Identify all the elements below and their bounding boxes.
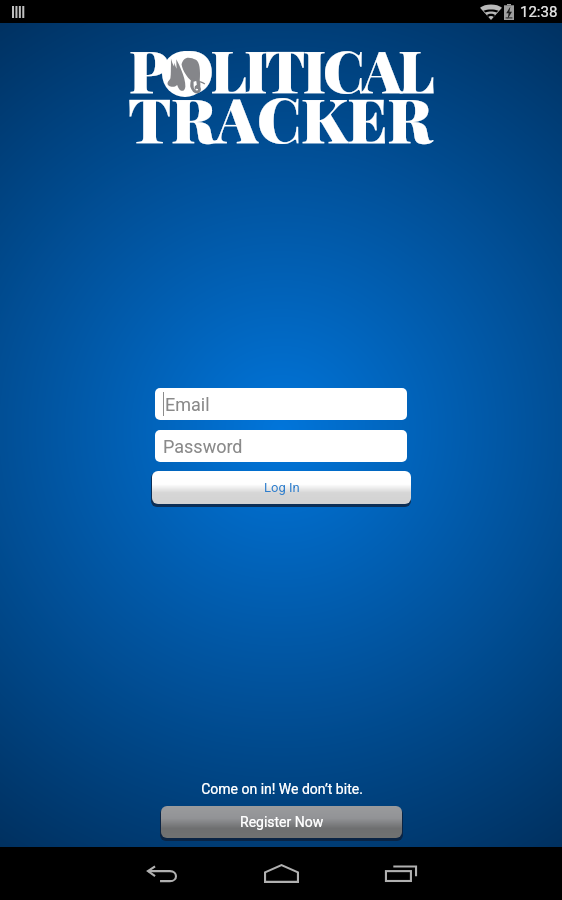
staticText: 12:38 [520,3,558,21]
button[interactable]: Recent apps [372,847,429,900]
button[interactable]: Back [134,847,191,900]
button[interactable]: Home [253,847,310,900]
staticText: TRACKER [128,76,432,159]
button[interactable]: Log In [152,471,411,504]
staticText: POLITICAL [129,30,432,107]
button[interactable]: Register Now [161,806,402,838]
button[interactable]: Password [155,430,407,462]
staticText: Register Now [240,814,324,830]
staticText: Log In [264,480,300,495]
staticText: Come on in! We don’t bite. [201,781,363,797]
button[interactable]: Email [155,388,407,420]
staticText: Email [165,394,210,415]
staticText: Password [163,436,243,457]
